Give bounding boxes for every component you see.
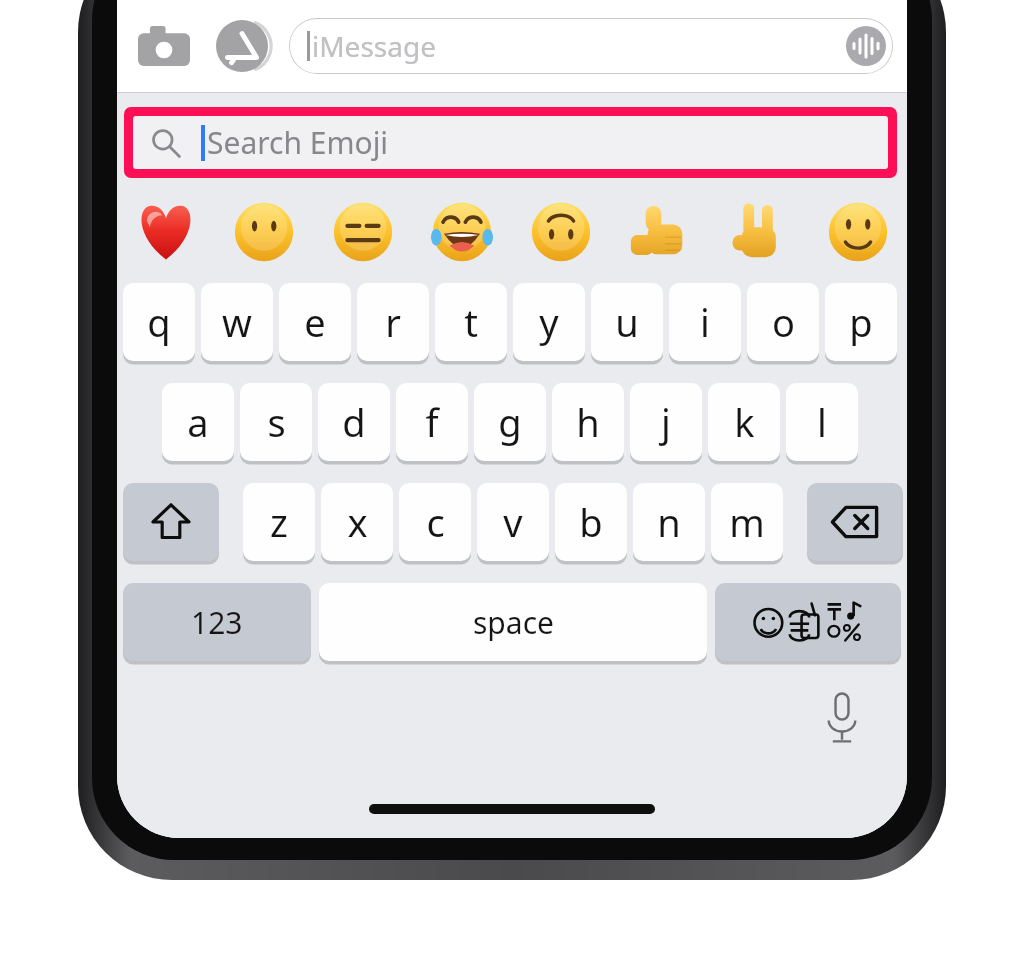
button[interactable]: t <box>435 283 507 361</box>
button[interactable]: b <box>555 483 627 561</box>
staticText: r <box>385 296 401 348</box>
staticText: v <box>503 496 523 548</box>
button[interactable]: o <box>747 283 819 361</box>
button[interactable]: n <box>633 483 705 561</box>
button[interactable]: z <box>243 483 315 561</box>
staticText: t <box>464 296 478 348</box>
button[interactable]: f <box>396 383 468 461</box>
button[interactable]: space <box>319 583 707 661</box>
button[interactable] <box>313 189 412 274</box>
staticText: h <box>576 396 600 448</box>
staticText: g <box>498 396 522 448</box>
staticText: m <box>729 496 765 548</box>
staticText: x <box>347 496 368 548</box>
button[interactable]: iMessage <box>289 18 893 74</box>
button[interactable]: Search Emoji <box>133 116 888 169</box>
staticText: q <box>147 296 171 348</box>
staticText: a <box>187 396 209 448</box>
button[interactable]: Audio message <box>844 24 888 68</box>
button[interactable]: u <box>591 283 663 361</box>
button[interactable]: i <box>669 283 741 361</box>
button[interactable]: App Store <box>213 17 271 75</box>
button[interactable]: g <box>474 383 546 461</box>
button[interactable]: r <box>357 283 429 361</box>
button[interactable]: c <box>399 483 471 561</box>
button[interactable]: h <box>552 383 624 461</box>
button[interactable]: Camera <box>135 17 193 75</box>
button[interactable]: d <box>318 383 390 461</box>
button[interactable]: s <box>240 383 312 461</box>
staticText: Search Emoji <box>207 122 389 163</box>
staticText: e <box>304 296 326 348</box>
button[interactable]: k <box>708 383 780 461</box>
button[interactable]: w <box>201 283 273 361</box>
button[interactable] <box>117 189 215 274</box>
button[interactable]: x <box>321 483 393 561</box>
button[interactable] <box>215 189 313 274</box>
staticText: s <box>267 396 286 448</box>
button[interactable]: j <box>630 383 702 461</box>
staticText: w <box>222 296 252 348</box>
staticText: c <box>426 496 445 548</box>
staticText: u <box>615 296 639 348</box>
staticText: o <box>772 296 795 348</box>
button[interactable]: l <box>786 383 858 461</box>
staticText: l <box>817 396 827 448</box>
staticText: y <box>539 296 559 348</box>
button[interactable]: q <box>123 283 195 361</box>
button[interactable] <box>610 189 709 274</box>
button[interactable]: Emoji and symbols <box>715 583 901 661</box>
staticText: iMessage <box>312 27 436 65</box>
button[interactable]: a <box>162 383 234 461</box>
button[interactable]: m <box>711 483 783 561</box>
button[interactable] <box>511 189 610 274</box>
button[interactable]: Backspace <box>807 483 903 561</box>
button[interactable] <box>808 189 907 274</box>
button[interactable]: Dictation <box>811 687 873 749</box>
button[interactable] <box>709 189 808 274</box>
staticText: n <box>657 496 681 548</box>
staticText: i <box>700 296 710 348</box>
staticText: space <box>473 602 554 643</box>
staticText: f <box>425 396 439 448</box>
button[interactable]: y <box>513 283 585 361</box>
button[interactable]: v <box>477 483 549 561</box>
staticText: j <box>661 396 671 448</box>
button[interactable]: p <box>825 283 897 361</box>
staticText: k <box>734 396 755 448</box>
button[interactable]: e <box>279 283 351 361</box>
button[interactable] <box>412 189 511 274</box>
staticText: z <box>270 496 288 548</box>
button[interactable]: Shift <box>123 483 219 561</box>
staticText: p <box>849 296 873 348</box>
staticText: b <box>579 496 603 548</box>
staticText: 123 <box>191 602 243 643</box>
staticText: d <box>342 396 366 448</box>
button[interactable]: 123 <box>123 583 311 661</box>
